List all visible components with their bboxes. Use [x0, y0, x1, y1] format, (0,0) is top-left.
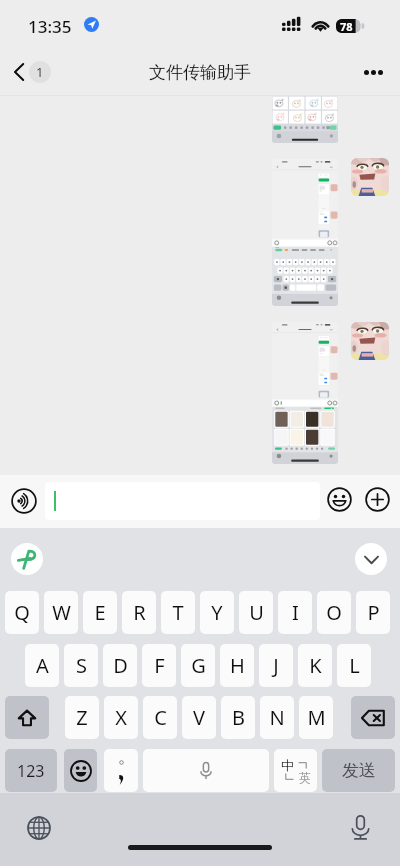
- button[interactable]: D: [103, 644, 137, 687]
- staticText: Q: [14, 599, 30, 626]
- staticText: V: [193, 704, 205, 731]
- button[interactable]: Shift: [5, 696, 49, 739]
- button[interactable]: Emoji keyboard: [64, 749, 97, 792]
- staticText: F: [154, 652, 165, 679]
- button[interactable]: G: [181, 644, 215, 687]
- staticText: I: [292, 599, 299, 626]
- staticText: X: [115, 704, 127, 731]
- staticText: U: [249, 599, 264, 626]
- staticText: 英: [299, 770, 311, 785]
- button[interactable]: More: [358, 61, 389, 84]
- button[interactable]: J: [259, 644, 293, 687]
- staticText: 中: [281, 757, 294, 773]
- button[interactable]: Z: [65, 696, 99, 739]
- button[interactable]: Y: [200, 591, 234, 634]
- staticText: Y: [211, 599, 223, 626]
- staticText: 78: [340, 19, 353, 33]
- staticText: J: [273, 652, 279, 679]
- staticText: 1: [36, 63, 44, 81]
- button[interactable]: X: [104, 696, 138, 739]
- button[interactable]: 发送: [322, 749, 395, 792]
- button[interactable]: Hide keyboard: [355, 543, 387, 575]
- button[interactable]: E: [83, 591, 117, 634]
- button[interactable]: M: [299, 696, 333, 739]
- button[interactable]: Back: [9, 56, 56, 88]
- button[interactable]: Voice input: [143, 749, 269, 792]
- staticText: 文件传输助手: [149, 62, 251, 83]
- staticText: B: [232, 704, 245, 731]
- button[interactable]: Input method: [11, 543, 43, 575]
- staticText: Z: [76, 704, 88, 731]
- button[interactable]: H: [220, 644, 254, 687]
- button[interactable]: More functions: [363, 485, 391, 513]
- staticText: P: [367, 599, 380, 626]
- button[interactable]: B: [221, 696, 255, 739]
- staticText: T: [172, 599, 184, 626]
- staticText: 发送: [342, 760, 376, 781]
- button[interactable]: W: [44, 591, 78, 634]
- button[interactable]: F: [142, 644, 176, 687]
- staticText: M: [307, 704, 326, 731]
- button[interactable]: A: [25, 644, 59, 687]
- staticText: D: [113, 652, 128, 679]
- button[interactable]: [45, 482, 320, 520]
- staticText: S: [76, 652, 87, 679]
- button[interactable]: L: [337, 644, 371, 687]
- button[interactable]: U: [239, 591, 273, 634]
- button[interactable]: Voice message: [9, 486, 39, 516]
- button[interactable]: Q: [5, 591, 39, 634]
- staticText: R: [133, 599, 146, 626]
- button[interactable]: I: [278, 591, 312, 634]
- button[interactable]: C: [143, 696, 177, 739]
- button[interactable]: 123: [5, 749, 57, 792]
- staticText: N: [269, 704, 285, 731]
- staticText: E: [94, 599, 106, 626]
- button[interactable]: Switch input language: [25, 814, 53, 842]
- button[interactable]: T: [161, 591, 195, 634]
- staticText: O: [326, 599, 342, 626]
- button[interactable]: P: [356, 591, 390, 634]
- button[interactable]: Chinese English toggle: [274, 749, 317, 792]
- button[interactable]: Voice dictation: [346, 814, 374, 842]
- button[interactable]: O: [317, 591, 351, 634]
- button[interactable]: N: [260, 696, 294, 739]
- button[interactable]: R: [122, 591, 156, 634]
- staticText: H: [230, 652, 245, 679]
- staticText: C: [154, 704, 167, 731]
- staticText: G: [191, 652, 206, 679]
- staticText: L: [349, 652, 360, 679]
- button[interactable]: Emoji: [325, 485, 353, 513]
- staticText: A: [36, 652, 49, 679]
- button[interactable]: [104, 749, 138, 792]
- staticText: W: [52, 599, 71, 626]
- button[interactable]: Backspace: [351, 696, 395, 739]
- button[interactable]: V: [182, 696, 216, 739]
- button[interactable]: K: [298, 644, 332, 687]
- button[interactable]: S: [64, 644, 98, 687]
- staticText: 123: [17, 760, 45, 782]
- staticText: 13:35: [28, 15, 72, 38]
- staticText: K: [309, 652, 322, 679]
